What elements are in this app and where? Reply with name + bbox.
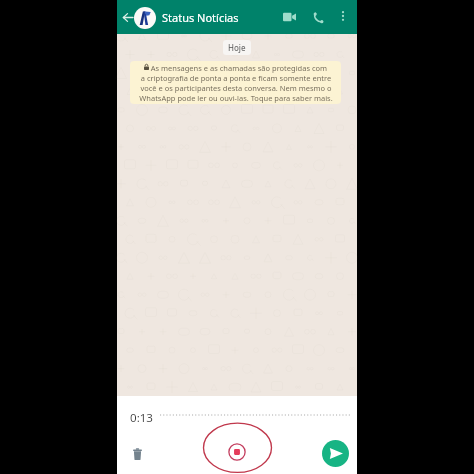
button[interactable]: Video call	[279, 7, 299, 27]
button[interactable]: Hoje	[223, 40, 251, 55]
button[interactable]: Delete recording	[127, 443, 148, 464]
staticText: 0:13	[130, 410, 154, 426]
button[interactable]: Send	[322, 440, 349, 467]
button[interactable]: Voice call	[308, 7, 328, 27]
button[interactable]: Stop recording	[226, 441, 248, 463]
button[interactable]: Profile picture	[134, 7, 156, 29]
button[interactable]: As mensagens e as chamadas são protegida…	[130, 61, 341, 104]
staticText: Status Notícias	[162, 10, 239, 25]
button[interactable]: More options	[334, 7, 352, 25]
staticText: Hoje	[228, 42, 246, 53]
button[interactable]: Back	[118, 7, 138, 27]
staticText: As mensagens e as chamadas são protegida…	[139, 63, 333, 103]
